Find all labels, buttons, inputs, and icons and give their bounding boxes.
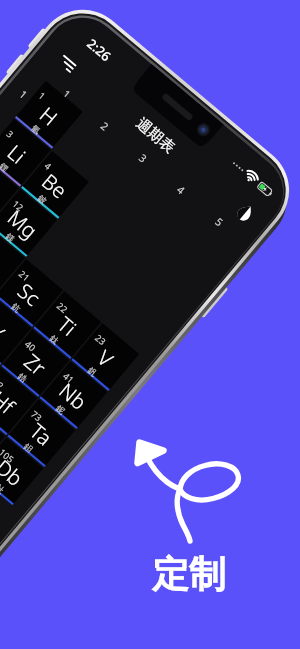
button[interactable]: 定制 [152, 551, 226, 598]
staticText: 定制 [152, 551, 226, 598]
